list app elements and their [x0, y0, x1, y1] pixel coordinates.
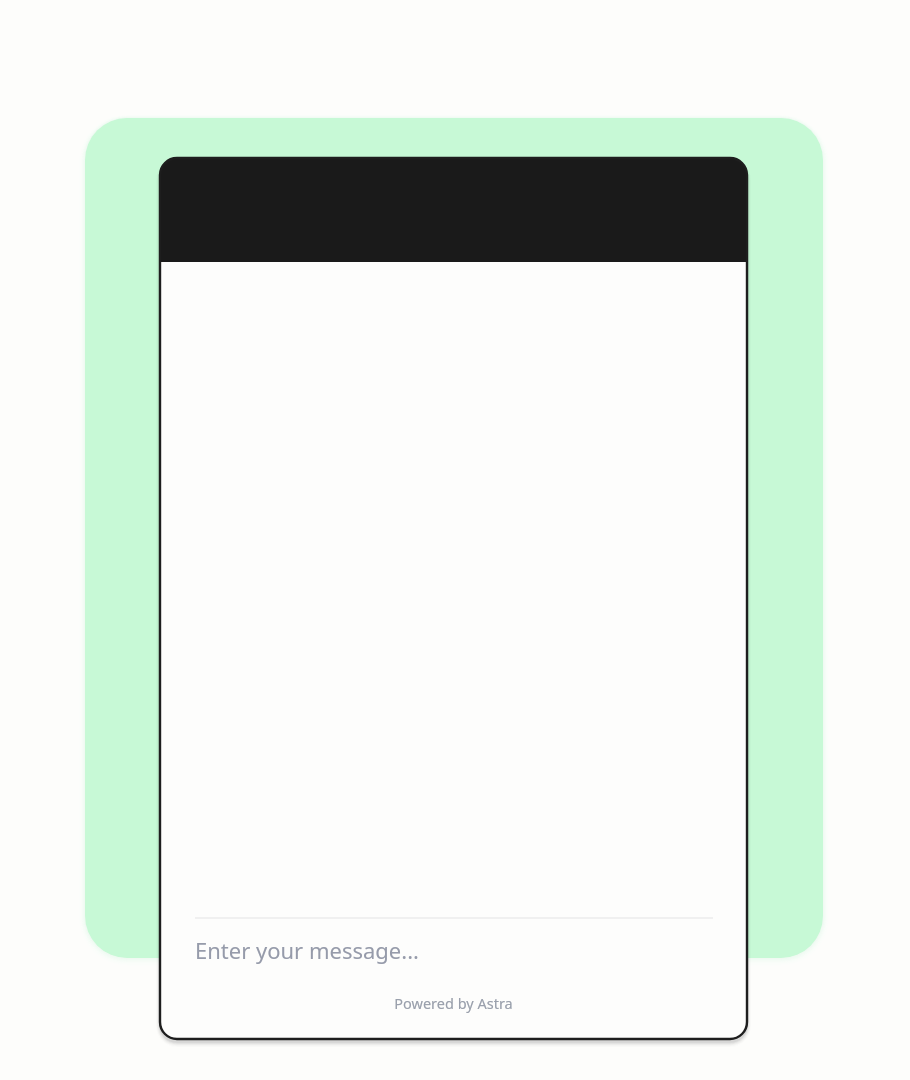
staticText: Powered by Astra — [394, 993, 513, 1013]
button[interactable]: Powered by Astra — [160, 988, 747, 1018]
button[interactable]: App header — [160, 158, 747, 262]
button[interactable]: Enter your message... — [195, 919, 713, 981]
staticText: Enter your message... — [195, 935, 419, 965]
